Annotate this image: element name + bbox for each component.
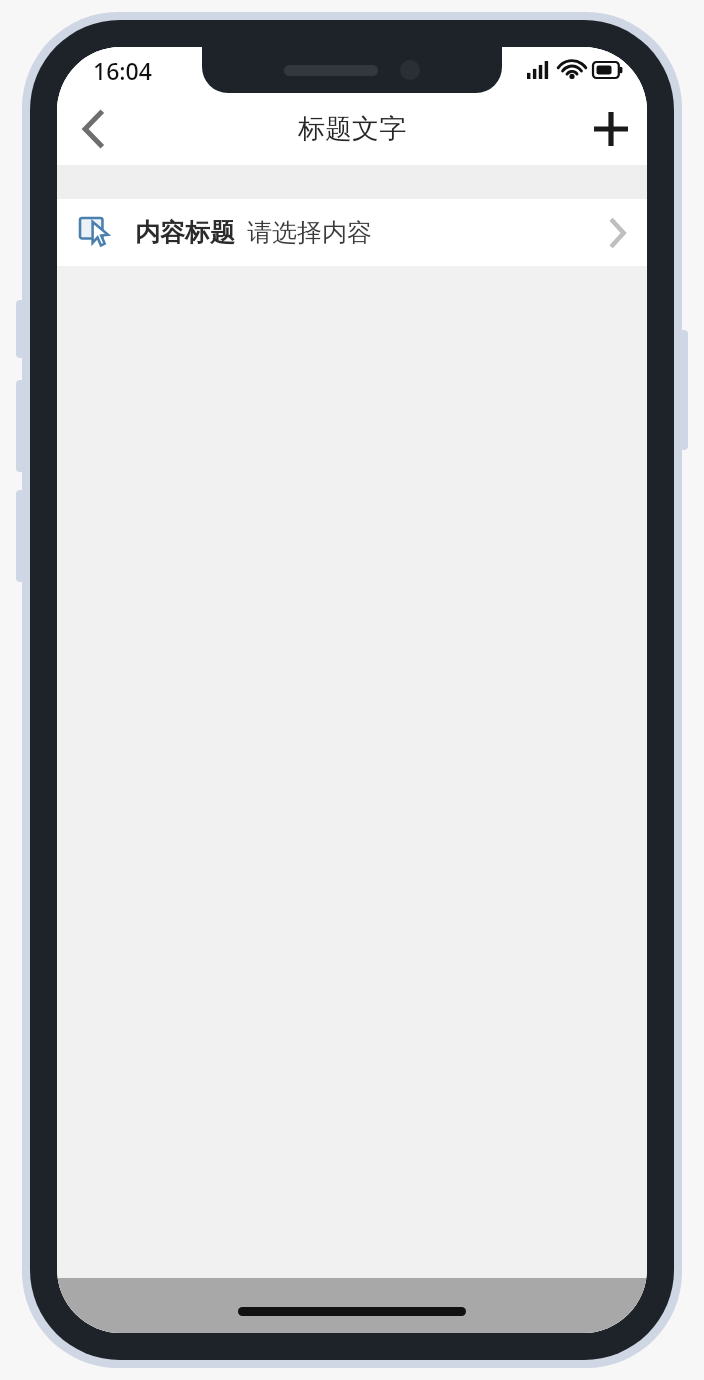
button[interactable]: 内容标题 bbox=[57, 199, 647, 266]
button[interactable]: Back bbox=[57, 93, 129, 165]
button[interactable]: Add bbox=[575, 93, 647, 165]
staticText: 请选择内容 bbox=[247, 217, 372, 248]
staticText: 内容标题 bbox=[135, 217, 235, 248]
staticText: 标题文字 bbox=[298, 112, 406, 146]
staticText: 16:04 bbox=[93, 55, 152, 86]
